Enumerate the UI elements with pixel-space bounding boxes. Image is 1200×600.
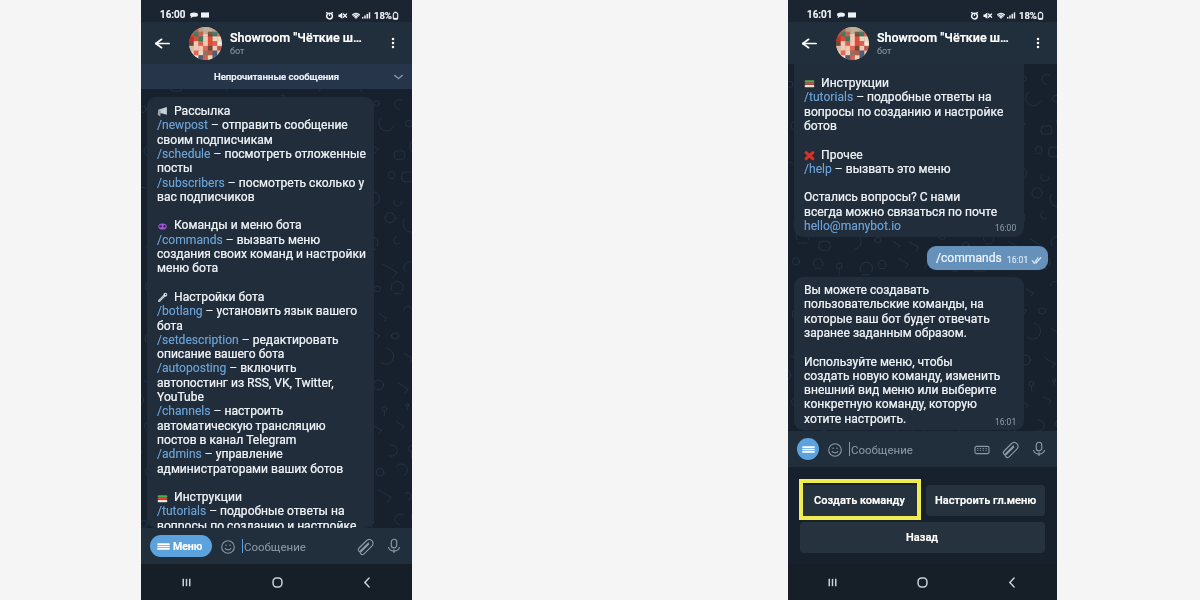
staticText: внешний вид меню или выберите	[804, 383, 997, 397]
button[interactable]: Emoji	[219, 538, 236, 555]
staticText: 16:00	[995, 223, 1017, 233]
staticText: Команды и меню бота	[174, 218, 302, 232]
staticText: вас подписчиков	[157, 190, 255, 204]
staticText: описание вашего бота	[157, 347, 285, 361]
button[interactable]: Emoji	[826, 441, 843, 458]
button[interactable]: Создать команду	[800, 485, 918, 516]
button[interactable]: Back	[322, 564, 412, 600]
button[interactable]: Back	[148, 29, 176, 57]
staticText: Showroom "Чёткие ш…	[877, 30, 1009, 45]
staticText: /subscribers – посмотреть сколько у	[157, 176, 365, 190]
button[interactable]: More options	[381, 31, 405, 55]
staticText: меню бота	[157, 261, 218, 275]
staticText: /help – вызвать это меню	[804, 162, 951, 176]
button[interactable]: Back	[795, 29, 823, 57]
button[interactable]: Keyboard	[973, 441, 990, 458]
button[interactable]: More options	[1026, 31, 1050, 55]
staticText: Настройки бота	[174, 290, 265, 304]
staticText: постов в канал Telegram	[157, 433, 297, 447]
button[interactable]: Voice message	[1030, 440, 1048, 458]
staticText: Инструкции	[821, 76, 889, 90]
button[interactable]: Voice message	[385, 537, 403, 555]
staticText: Сообщение	[244, 540, 306, 553]
staticText: Используйте меню, чтобы	[804, 355, 953, 369]
button[interactable]: Home	[877, 564, 967, 600]
staticText: пользовательские команды, на	[804, 297, 984, 311]
staticText: хотите настроить.	[804, 412, 907, 426]
staticText: 16:01	[807, 9, 833, 21]
staticText: бота	[157, 319, 183, 333]
button[interactable]: Attach	[355, 537, 373, 555]
staticText: /tutorials – подробные ответы на	[157, 504, 345, 518]
staticText: ботов	[804, 119, 837, 133]
staticText: Рассылка	[174, 104, 231, 118]
button[interactable]: Home	[232, 564, 322, 600]
staticText: Непрочитанные сообщения	[214, 71, 339, 82]
staticText: своим подписчикам	[157, 133, 273, 147]
staticText: Настроить гл.меню	[935, 494, 1037, 507]
staticText: Showroom "Чёткие ш…	[230, 30, 362, 45]
staticText: конкретную команду, которую	[804, 397, 977, 411]
staticText: /botlang – установить язык вашего	[157, 304, 358, 318]
staticText: создать новую команду, изменить	[804, 369, 1001, 383]
staticText: автоматическую трансляцию	[157, 419, 326, 433]
button[interactable]: Recents	[141, 564, 232, 600]
staticText: /commands	[936, 251, 1002, 265]
staticText: Остались вопросы? С нами	[804, 190, 961, 204]
staticText: Инструкции	[174, 490, 242, 504]
staticText: автопостинг из RSS, VK, Twitter,	[157, 376, 334, 390]
staticText: /tutorials – подробные ответы на	[804, 90, 992, 104]
staticText: Сообщение	[851, 443, 913, 456]
staticText: посты	[157, 161, 193, 175]
button[interactable]: Menu	[797, 438, 819, 460]
button[interactable]: Настроить гл.меню	[926, 485, 1045, 516]
staticText: YouTube	[157, 390, 204, 404]
button[interactable]: Меню	[150, 535, 212, 557]
staticText: Создать команду	[814, 494, 905, 507]
button[interactable]: Attach	[1000, 440, 1018, 458]
button[interactable]: Назад	[800, 522, 1045, 553]
staticText: 18%	[374, 10, 392, 21]
staticText: /schedule – посмотреть отложенные	[157, 147, 366, 161]
staticText: бот	[230, 46, 245, 57]
staticText: /commands – вызвать меню	[157, 233, 321, 247]
staticText: /channels – настроить	[157, 404, 284, 418]
button[interactable]: Recents	[788, 564, 877, 600]
staticText: 18%	[1019, 10, 1037, 21]
staticText: /autoposting – включить	[157, 361, 297, 375]
staticText: hello@manybot.io	[804, 219, 901, 233]
staticText: /admins – управление	[157, 447, 283, 461]
button[interactable]: Back	[967, 564, 1057, 600]
staticText: 16:01	[995, 417, 1017, 427]
staticText: создания своих команд и настройки	[157, 247, 366, 261]
staticText: всегда можно связаться по почте	[804, 205, 998, 219]
staticText: вопросы по созданию и настройке	[157, 519, 357, 528]
staticText: вопросы по созданию и настройке	[804, 105, 1004, 119]
staticText: заранее заданным образом.	[804, 326, 967, 340]
staticText: /newpost – отправить сообщение	[157, 118, 348, 132]
staticText: Назад	[906, 531, 939, 544]
staticText: 16:00	[160, 9, 186, 21]
staticText: администраторами ваших ботов	[157, 462, 344, 476]
staticText: бот	[877, 46, 892, 57]
staticText: 16:01	[1007, 255, 1029, 265]
staticText: которые ваш бот будет отвечать	[804, 312, 990, 326]
staticText: Прочее	[821, 148, 863, 162]
staticText: Вы можете создавать	[804, 283, 929, 297]
staticText: Меню	[173, 540, 203, 552]
staticText: /setdescription – редактировать	[157, 333, 339, 347]
